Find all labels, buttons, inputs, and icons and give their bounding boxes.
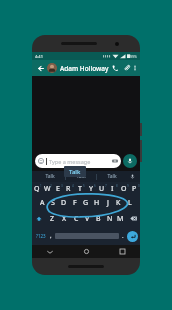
- button[interactable]: Q: [32, 182, 42, 196]
- staticText: W: [44, 184, 51, 194]
- staticText: Adam Holloway: [60, 64, 109, 73]
- staticText: 5: [83, 184, 85, 188]
- staticText: B: [96, 214, 101, 224]
- button[interactable]: S: [47, 196, 58, 210]
- button[interactable]: U: [96, 182, 107, 196]
- staticText: 0: [138, 184, 140, 188]
- button[interactable]: Contact photo: [47, 63, 57, 73]
- staticText: H: [94, 198, 100, 208]
- staticText: 4: [72, 184, 74, 188]
- button[interactable]: ?123: [34, 227, 47, 245]
- button[interactable]: N: [104, 210, 115, 227]
- button[interactable]: P: [129, 182, 140, 196]
- staticText: I: [111, 184, 114, 194]
- staticText: 6: [94, 184, 96, 188]
- button[interactable]: J: [102, 196, 113, 210]
- staticText: O: [121, 184, 127, 194]
- staticText: 4:41: [35, 54, 43, 59]
- staticText: C: [74, 214, 79, 224]
- button[interactable]: Talk: [64, 166, 86, 177]
- button[interactable]: Enter: [127, 231, 138, 242]
- staticText: Y: [89, 184, 93, 194]
- staticText: F: [73, 198, 77, 208]
- staticText: U: [99, 184, 105, 194]
- staticText: Z: [50, 214, 55, 224]
- button[interactable]: K: [113, 196, 124, 210]
- button[interactable]: I: [107, 182, 118, 196]
- button[interactable]: H: [91, 196, 102, 210]
- staticText: ?123: [36, 233, 46, 239]
- staticText: Q: [34, 184, 40, 194]
- button[interactable]: G: [80, 196, 91, 210]
- button[interactable]: T: [74, 182, 85, 196]
- button[interactable]: Attach: [121, 62, 133, 74]
- button[interactable]: V: [82, 210, 93, 227]
- staticText: E: [56, 184, 60, 194]
- button[interactable]: Voice input: [127, 171, 138, 182]
- button[interactable]: C: [70, 210, 82, 227]
- staticText: .: [122, 232, 124, 240]
- button[interactable]: Home: [68, 245, 104, 258]
- staticText: 99%: [130, 54, 137, 59]
- button[interactable]: Call: [109, 62, 121, 74]
- button[interactable]: R: [63, 182, 74, 196]
- staticText: P: [132, 184, 137, 194]
- staticText: S: [51, 198, 55, 208]
- staticText: G: [83, 198, 89, 208]
- button[interactable]: L: [124, 196, 135, 210]
- staticText: X: [62, 214, 67, 224]
- button[interactable]: Hide keyboard: [32, 245, 68, 258]
- staticText: L: [128, 198, 132, 208]
- button[interactable]: D: [58, 196, 69, 210]
- staticText: 2: [50, 184, 52, 188]
- staticText: 7: [105, 184, 107, 188]
- button[interactable]: Talk: [34, 171, 65, 182]
- staticText: Talk: [45, 173, 55, 180]
- staticText: 8: [116, 184, 118, 188]
- button[interactable]: O: [118, 182, 129, 196]
- button[interactable]: W: [42, 182, 52, 196]
- staticText: A: [40, 198, 45, 208]
- staticText: T: [78, 184, 82, 194]
- button[interactable]: Recents: [104, 245, 140, 258]
- staticText: R: [66, 184, 71, 194]
- button[interactable]: Shift: [32, 210, 46, 227]
- button[interactable]: Y: [85, 182, 96, 196]
- button[interactable]: Voice message: [123, 154, 137, 168]
- staticText: Type a message: [49, 158, 91, 165]
- button[interactable]: Type a message: [35, 154, 121, 168]
- staticText: J: [107, 198, 109, 208]
- staticText: V: [85, 214, 90, 224]
- staticText: D: [61, 198, 67, 208]
- staticText: Talk: [69, 168, 81, 176]
- staticText: N: [107, 214, 113, 224]
- staticText: 9: [127, 184, 129, 188]
- staticText: ,: [50, 232, 52, 240]
- button[interactable]: .: [119, 227, 127, 245]
- button[interactable]: X: [58, 210, 70, 227]
- staticText: M: [117, 214, 124, 224]
- button[interactable]: E: [52, 182, 63, 196]
- button[interactable]: Back: [35, 63, 46, 74]
- staticText: 1: [40, 184, 42, 188]
- staticText: Talk: [76, 173, 86, 180]
- button[interactable]: ,: [47, 227, 55, 245]
- button[interactable]: Backspace: [126, 210, 140, 227]
- staticText: K: [116, 198, 121, 208]
- button[interactable]: Talk: [97, 171, 127, 182]
- button[interactable]: A: [37, 196, 47, 210]
- button[interactable]: More options: [133, 63, 137, 73]
- button[interactable]: B: [93, 210, 104, 227]
- button[interactable]: F: [69, 196, 80, 210]
- button[interactable]: M: [115, 210, 126, 227]
- button[interactable]: Talk: [66, 171, 96, 182]
- button[interactable]: Z: [46, 210, 58, 227]
- staticText: 3: [61, 184, 63, 188]
- staticText: Talk: [107, 173, 117, 180]
